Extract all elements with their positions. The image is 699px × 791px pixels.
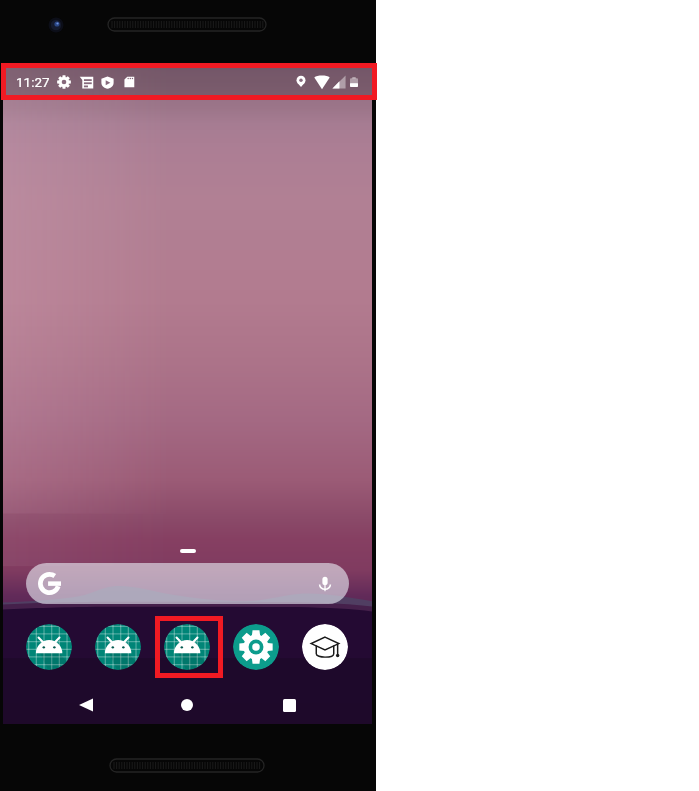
button[interactable]: Android app 2 xyxy=(95,624,141,670)
button[interactable]: Android app 1 xyxy=(26,624,72,670)
button[interactable] xyxy=(26,563,349,604)
button[interactable]: Settings xyxy=(233,624,279,670)
button[interactable]: Back xyxy=(68,687,104,723)
button[interactable]: Recent apps xyxy=(271,687,307,723)
button[interactable]: Learning app xyxy=(302,624,348,670)
staticText: 11:27 xyxy=(16,74,50,90)
button[interactable]: Android app 3 xyxy=(164,624,210,670)
button[interactable]: Home xyxy=(169,687,205,723)
